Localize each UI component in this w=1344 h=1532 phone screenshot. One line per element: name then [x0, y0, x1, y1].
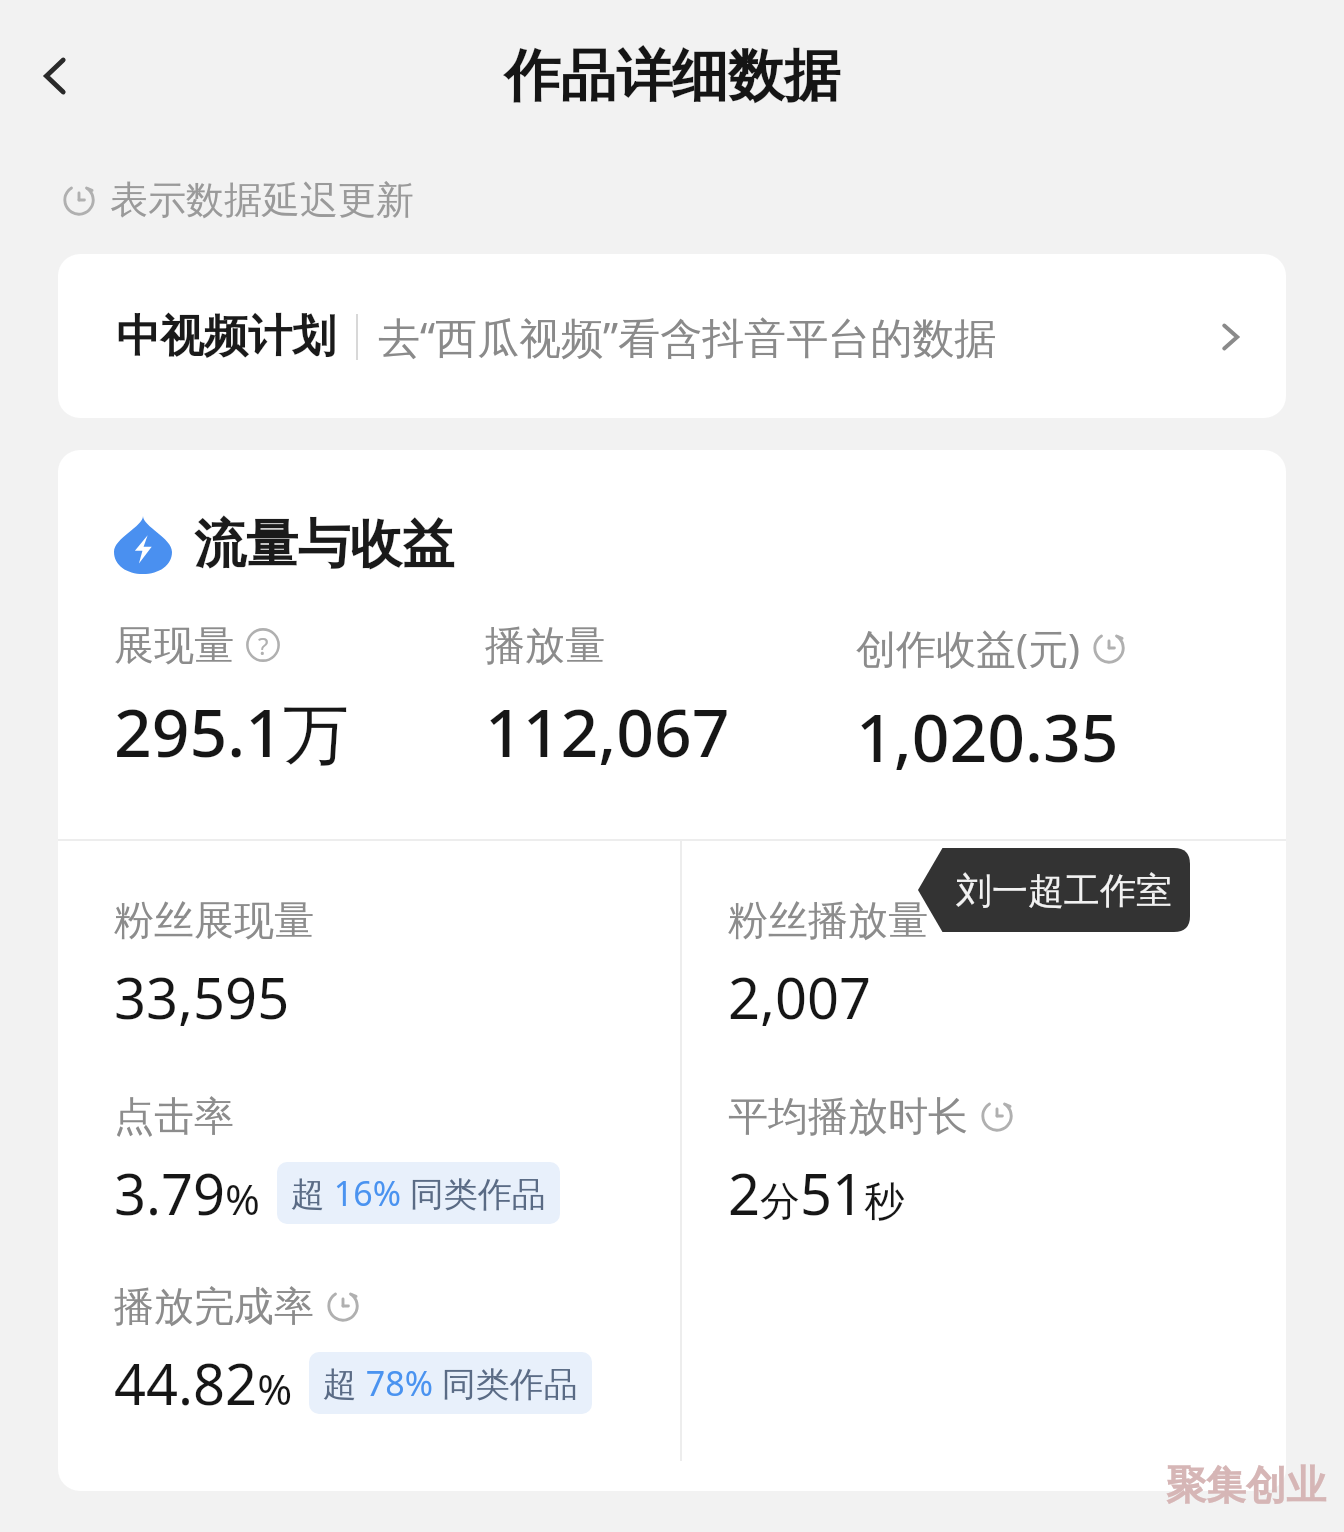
staticText: 2,007 [728, 959, 872, 1035]
staticText: ? [258, 629, 269, 662]
staticText: 作品详细数据 [504, 41, 840, 112]
staticText: 表示数据延迟更新 [110, 176, 414, 224]
staticText: 3.79% [114, 1155, 261, 1231]
staticText: 展现量 [114, 620, 234, 670]
staticText: 点击率 [114, 1091, 234, 1141]
staticText: 33,595 [114, 959, 290, 1035]
staticText: 流量与收益 [194, 512, 454, 578]
staticText: 112,067 [485, 686, 730, 776]
staticText: 超 78% 同类作品 [323, 1360, 578, 1406]
staticText: 粉丝展现量 [114, 895, 314, 945]
staticText: 中视频计划 [116, 309, 336, 364]
staticText: 播放量 [485, 620, 605, 670]
staticText: 刘一超工作室 [956, 868, 1172, 913]
button[interactable]: 超 78% 同类作品 [323, 1360, 578, 1406]
staticText: 创作收益(元) [856, 620, 1080, 675]
staticText: 去“西瓜视频”看含抖音平台的数据 [378, 308, 997, 365]
button[interactable]: 超 16% 同类作品 [291, 1170, 546, 1216]
staticText: 2分51秒 [728, 1155, 905, 1231]
staticText: 44.82% [114, 1345, 293, 1421]
button[interactable]: Back [18, 38, 94, 114]
staticText: 播放完成率 [114, 1281, 314, 1331]
staticText: 1,020.35 [856, 691, 1119, 781]
staticText: 超 16% 同类作品 [291, 1170, 546, 1216]
staticText: 粉丝播放量 [728, 895, 928, 945]
staticText: 295.1万 [114, 686, 349, 776]
staticText: 平均播放时长 [728, 1091, 968, 1141]
staticText: 聚集创业 [1166, 1460, 1326, 1510]
button[interactable]: 中视频计划 [58, 254, 1286, 418]
